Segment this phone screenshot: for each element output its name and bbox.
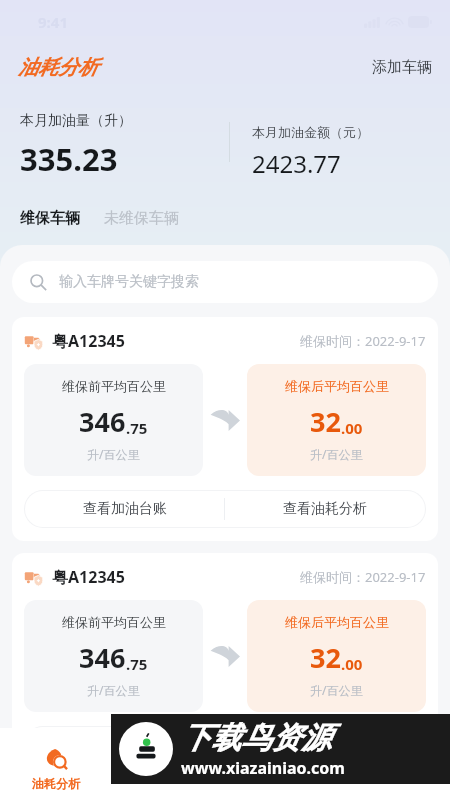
- staticText: 本月加油量（升）: [20, 112, 132, 130]
- button[interactable]: 维保后平均百公里: [247, 600, 426, 712]
- staticText: 查看加油台账: [83, 736, 167, 754]
- button[interactable]: 维保后平均百公里: [247, 364, 426, 476]
- staticText: 维保车辆: [20, 209, 80, 228]
- staticText: 查看油耗分析: [283, 736, 367, 754]
- staticText: www.xiazainiao.com: [181, 757, 345, 779]
- staticText: 升/百公里: [87, 446, 140, 462]
- button[interactable]: 粤A12345: [12, 317, 438, 541]
- button[interactable]: 查看加油台账: [25, 491, 224, 527]
- staticText: 346: [79, 639, 126, 676]
- staticText: 335.23: [20, 138, 118, 180]
- staticText: 粤A12345: [52, 330, 125, 352]
- staticText: .00: [341, 418, 363, 438]
- staticText: 2423.77: [252, 147, 341, 180]
- staticText: 升/百公里: [310, 682, 363, 698]
- button[interactable]: 油耗分析: [0, 728, 112, 800]
- staticText: 粤A12345: [52, 566, 125, 588]
- staticText: .75: [126, 654, 148, 674]
- staticText: 添加车辆: [372, 58, 432, 77]
- button[interactable]: 添加车辆: [354, 54, 450, 81]
- staticText: 9:41: [38, 12, 68, 32]
- staticText: 32: [310, 639, 341, 676]
- staticText: 346: [79, 403, 126, 440]
- button[interactable]: 维保车辆: [20, 206, 80, 231]
- staticText: 维保前平均百公里: [62, 378, 166, 394]
- button[interactable]: 查看加油台账: [25, 727, 224, 763]
- staticText: 查看油耗分析: [283, 500, 367, 518]
- button[interactable]: 未维保车辆: [104, 206, 179, 231]
- staticText: 油耗分析: [18, 55, 98, 80]
- staticText: 输入车牌号关键字搜索: [59, 273, 199, 291]
- staticText: 下载鸟资源: [181, 719, 331, 757]
- staticText: 油耗分析: [32, 776, 80, 791]
- button[interactable]: 粤A12345: [12, 553, 438, 777]
- staticText: 查看加油台账: [83, 500, 167, 518]
- button[interactable]: 输入车牌号关键字搜索: [12, 261, 438, 303]
- button[interactable]: 查看油耗分析: [225, 727, 425, 763]
- staticText: 维保时间：2022-9-17: [300, 568, 426, 586]
- staticText: 维保后平均百公里: [285, 614, 389, 630]
- staticText: 升/百公里: [310, 446, 363, 462]
- staticText: 维保前平均百公里: [62, 614, 166, 630]
- staticText: 升/百公里: [87, 682, 140, 698]
- staticText: 维保时间：2022-9-17: [300, 332, 426, 350]
- button[interactable]: 查看油耗分析: [225, 491, 425, 527]
- button[interactable]: 维保前平均百公里: [24, 364, 203, 476]
- staticText: 未维保车辆: [104, 209, 179, 228]
- staticText: 32: [310, 403, 341, 440]
- staticText: .00: [341, 654, 363, 674]
- staticText: .75: [126, 418, 148, 438]
- staticText: 本月加油金额（元）: [252, 124, 369, 140]
- button[interactable]: 维保前平均百公里: [24, 600, 203, 712]
- staticText: 维保后平均百公里: [285, 378, 389, 394]
